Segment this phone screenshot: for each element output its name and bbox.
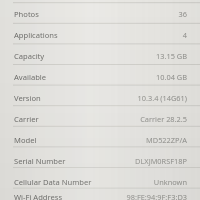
button[interactable]: Version [0,87,200,108]
staticText: Wi-Fi Address [14,192,63,200]
button[interactable]: Cellular Data Number [0,171,200,192]
staticText: 4 [182,30,187,40]
button[interactable]: Wi-Fi Address [0,192,200,200]
staticText: Capacity [14,51,45,61]
staticText: 13.15 GB [156,51,187,61]
button[interactable]: Serial Number [0,150,200,171]
staticText: Version [14,93,41,103]
staticText: Serial Number [14,156,66,166]
staticText: 10.04 GB [156,72,187,82]
staticText: 36 [178,9,187,19]
staticText: Applications [14,30,58,40]
staticText: Carrier [14,114,39,124]
staticText: 10.3.4 (14G61) [137,93,187,103]
staticText: DLXJM0RSF18P [135,156,187,166]
staticText: Model [14,135,37,145]
button[interactable]: Available [0,66,200,87]
button[interactable]: Applications [0,24,200,45]
staticText: Carrier 28.2.5 [140,114,187,124]
staticText: 98:FE:94:9F:F3:D3 [126,192,187,200]
button[interactable]: Photos [0,3,200,24]
button[interactable]: Carrier [0,108,200,129]
staticText: Unknown [153,177,187,187]
staticText: MD522ZP/A [146,135,187,145]
staticText: Photos [14,9,39,19]
button[interactable]: Model [0,129,200,150]
staticText: Cellular Data Number [14,177,92,187]
staticText: Available [14,72,47,82]
button[interactable]: Capacity [0,45,200,66]
